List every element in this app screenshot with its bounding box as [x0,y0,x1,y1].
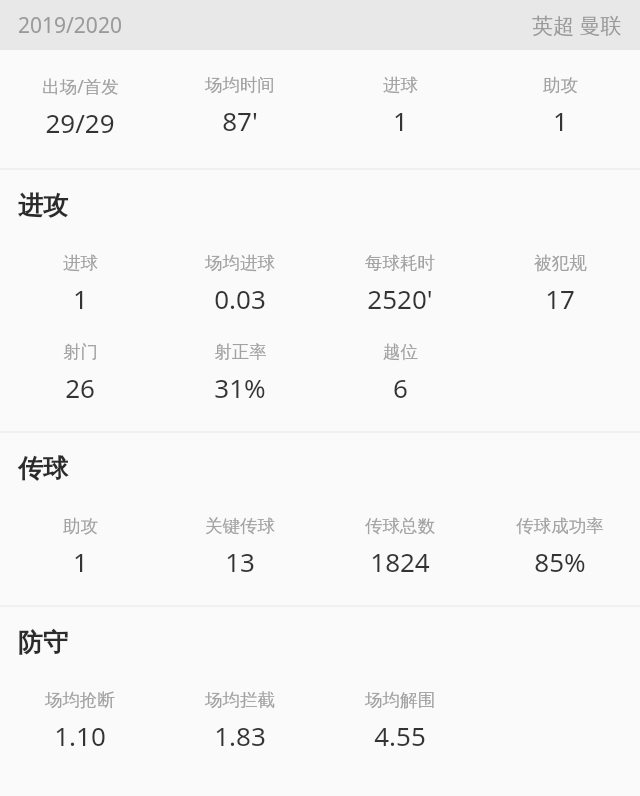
staticText: 场均进球 [205,252,275,274]
staticText: 英超 曼联 [532,11,622,40]
staticText: 越位 [383,341,418,363]
staticText: 85% [534,544,586,579]
staticText: 0.03 [214,281,266,316]
staticText: 场均时间 [205,74,275,96]
staticText: 传球成功率 [516,515,604,537]
staticText: 1 [393,103,408,138]
staticText: 传球总数 [365,515,435,537]
staticText: 1.83 [214,718,266,753]
staticText: 射正率 [214,341,267,363]
staticText: 17 [545,281,575,316]
staticText: 助攻 [543,74,578,96]
staticText: 场均解围 [365,689,435,711]
staticText: 传球 [18,453,68,484]
staticText: 进球 [383,74,418,96]
staticText: 1 [553,103,568,138]
staticText: 每球耗时 [365,252,435,274]
staticText: 射门 [63,341,98,363]
staticText: 被犯规 [534,252,587,274]
staticText: 场均拦截 [205,689,275,711]
staticText: 2019/2020 [18,11,122,40]
staticText: 进攻 [18,190,68,221]
staticText: 6 [393,370,408,405]
staticText: 关键传球 [205,515,275,537]
staticText: 2520' [367,281,433,316]
staticText: 出场/首发 [42,74,119,98]
staticText: 4.55 [374,718,426,753]
staticText: 助攻 [63,515,98,537]
staticText: 进球 [63,252,98,274]
staticText: 26 [65,370,95,405]
staticText: 防守 [18,627,68,658]
staticText: 29/29 [45,105,115,140]
staticText: 1 [73,544,88,579]
staticText: 1.10 [54,718,106,753]
staticText: 87' [222,103,258,138]
staticText: 1824 [370,544,430,579]
staticText: 13 [225,544,255,579]
staticText: 场均抢断 [45,689,115,711]
button[interactable]: 2019/2020 [0,0,640,50]
staticText: 31% [214,370,266,405]
staticText: 1 [73,281,88,316]
